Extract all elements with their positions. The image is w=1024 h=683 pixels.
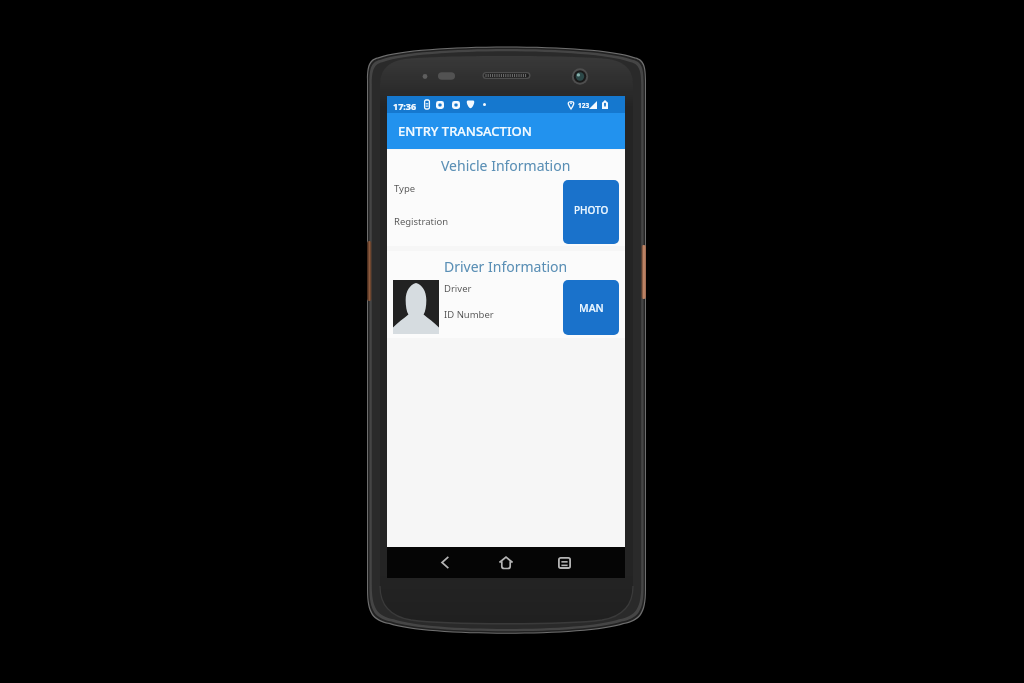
staticText: Vehicle Information (441, 156, 571, 175)
button[interactable]: Driver photo (393, 280, 439, 334)
button[interactable]: PHOTO (563, 180, 619, 244)
staticText: Registration (394, 215, 449, 228)
button[interactable]: Driver Information (387, 251, 625, 338)
staticText: Driver Information (444, 257, 568, 276)
button[interactable]: Home (490, 550, 522, 575)
button[interactable]: MAN (563, 280, 619, 335)
staticText: PHOTO (574, 203, 609, 217)
staticText: Driver (444, 282, 472, 295)
staticText: Type (394, 182, 416, 195)
staticText: MAN (579, 301, 604, 315)
staticText: 17:36 (393, 100, 417, 112)
button[interactable]: ENTRY TRANSACTION (387, 113, 625, 149)
staticText: 123 (578, 101, 590, 110)
button[interactable]: Back (429, 550, 461, 575)
staticText: ID Number (444, 308, 494, 321)
button[interactable]: Recent apps (548, 550, 580, 575)
button[interactable]: Vehicle Information (387, 150, 625, 246)
staticText: ENTRY TRANSACTION (398, 122, 532, 140)
